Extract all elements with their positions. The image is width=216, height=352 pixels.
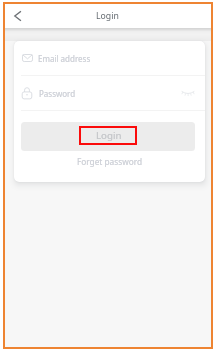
staticText: Password [39,88,76,99]
staticText: Login [96,10,119,22]
button[interactable]: Email address [14,41,205,75]
staticText: Email address [38,53,91,64]
button[interactable]: Login [21,122,195,151]
button[interactable]: Back [5,4,29,28]
button[interactable]: Show password [178,86,197,100]
button[interactable]: Forget password [14,156,205,167]
staticText: Login [96,129,122,142]
